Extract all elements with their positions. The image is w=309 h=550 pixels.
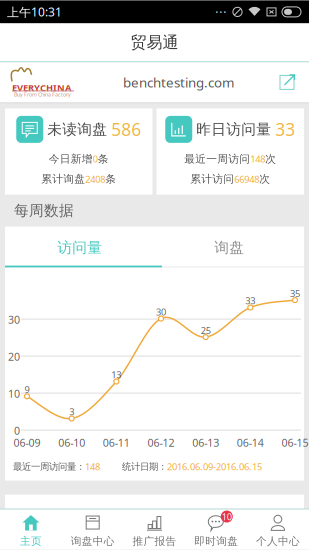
staticText: 3 [69,405,74,418]
staticText: 06-14 [237,436,264,450]
staticText: 最近一周访问量： [13,461,85,472]
staticText: 06-11 [103,436,130,450]
staticText: 25 [201,324,211,336]
button[interactable]: 昨日访问量 [156,108,304,195]
staticText: 累计询盘 [41,172,85,186]
staticText: 条 [98,152,109,165]
staticText: 06-13 [192,436,219,450]
button[interactable]: 访问量 [5,228,154,268]
staticText: Buy From China Factory [14,91,71,98]
button[interactable]: 询盘中心 [62,508,124,550]
staticText: 个人中心 [256,535,300,548]
staticText: ··· [215,3,227,21]
button[interactable]: Open in browser [271,66,303,98]
button[interactable]: 个人中心 [247,508,309,550]
staticText: benchtesting.com [123,73,234,91]
staticText: 2408 [85,173,105,185]
button[interactable]: 未读询盘 [5,108,152,195]
staticText: 统计日期： [122,461,167,472]
staticText: 586 [111,118,141,141]
staticText: 累计访问 [190,172,234,186]
staticText: 33 [245,294,255,307]
button[interactable]: 询盘 [154,228,304,268]
staticText: 0 [93,153,98,165]
button[interactable]: 推广报告 [124,508,185,550]
button[interactable]: 主页 [0,508,62,550]
staticText: 今日新增 [49,152,93,165]
staticText: 询盘中心 [71,535,115,548]
staticText: 30 [8,313,20,327]
staticText: 主页 [20,535,42,548]
staticText: 昨日访问量 [196,120,271,138]
staticText: 次 [259,172,270,186]
staticText: 66948 [234,173,259,185]
button[interactable]: 10 [185,508,247,550]
staticText: 2016.06.09-2016.06.15 [167,460,262,473]
staticText: 每周数据 [14,202,74,220]
staticText: 9 [24,383,29,396]
staticText: 10 [8,387,20,401]
staticText: EVERYCHINA [12,81,71,94]
staticText: 0 [14,424,20,438]
staticText: 10 [222,510,232,523]
staticText: 33 [275,118,295,141]
staticText: 06-15 [281,436,308,450]
staticText: 即时询盘 [194,535,238,548]
staticText: 询盘 [214,239,244,257]
staticText: 推广报告 [132,535,176,548]
staticText: 访问量 [57,239,102,257]
staticText: 148 [250,153,265,165]
staticText: 上午10:31 [7,4,62,20]
staticText: 35 [290,287,300,299]
staticText: 30 [156,306,166,318]
staticText: 最近一周访问 [184,152,250,165]
staticText: 06-09 [13,436,40,450]
staticText: 06-12 [147,436,174,450]
staticText: 148 [85,460,100,473]
staticText: 次 [265,152,276,165]
staticText: 贸易通 [130,33,178,52]
staticText: 未读询盘 [47,120,107,138]
staticText: 20 [8,350,20,364]
staticText: 条 [105,172,116,186]
staticText: 06-10 [58,436,85,450]
staticText: 13 [111,368,121,381]
